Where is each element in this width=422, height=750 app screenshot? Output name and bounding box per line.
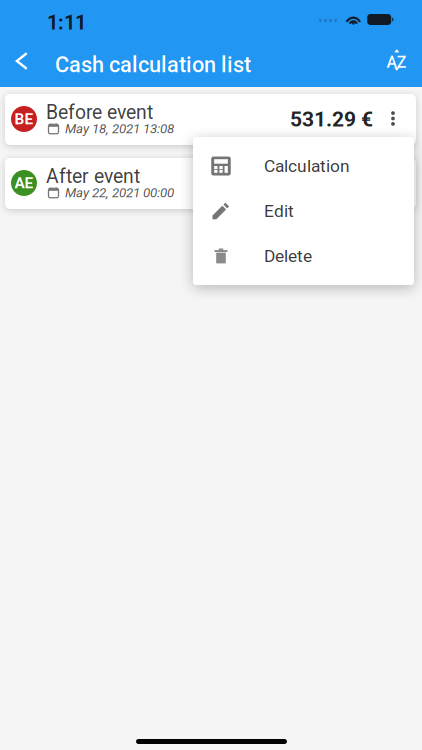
staticText: Edit xyxy=(264,201,294,221)
staticText: May 22, 2021 00:00 xyxy=(65,185,174,201)
button[interactable]: Sort xyxy=(375,38,419,82)
staticText: May 18, 2021 13:08 xyxy=(65,121,174,137)
staticText: Z xyxy=(397,53,407,72)
staticText: 531.29 € xyxy=(290,107,373,132)
staticText: AE xyxy=(14,174,33,192)
button[interactable]: Delete xyxy=(193,233,414,278)
staticText: Cash calculation list xyxy=(55,52,251,77)
button[interactable]: Calculation xyxy=(193,143,414,188)
staticText: BE xyxy=(14,110,33,128)
staticText: Before event xyxy=(46,101,153,124)
button[interactable]: Edit xyxy=(193,188,414,233)
staticText: After event xyxy=(46,165,140,188)
button[interactable]: More options xyxy=(378,93,408,144)
staticText: Calculation xyxy=(264,156,350,176)
staticText: 1:11 xyxy=(47,11,86,34)
staticText: A xyxy=(386,53,397,72)
staticText: Delete xyxy=(264,246,312,266)
button[interactable]: Back xyxy=(0,39,44,83)
